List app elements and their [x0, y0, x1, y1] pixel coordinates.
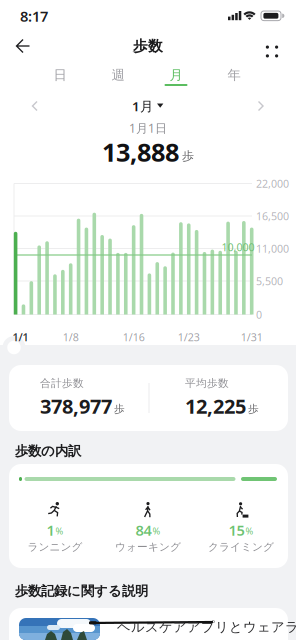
staticText: 1/23	[178, 330, 200, 344]
staticText: 1/1	[12, 330, 28, 344]
staticText: 378,977	[40, 393, 112, 419]
staticText: 日	[53, 67, 66, 83]
button[interactable]	[15, 39, 31, 53]
button[interactable]: 年	[205, 63, 263, 87]
staticText: 13,888	[102, 135, 179, 169]
staticText: 11,000	[256, 241, 289, 256]
staticText: 歩数の内訳	[15, 443, 81, 459]
staticText: 年	[227, 67, 240, 83]
staticText: 84	[135, 520, 151, 540]
button[interactable]	[258, 101, 264, 111]
staticText: 歩	[182, 149, 194, 163]
staticText: 1月1日	[129, 120, 167, 136]
button[interactable]: 日	[31, 63, 89, 87]
staticText: 週	[111, 67, 124, 83]
staticText: 1/31	[241, 330, 263, 344]
staticText: 合計歩数	[40, 377, 84, 390]
button[interactable]	[32, 101, 38, 111]
staticText: %	[152, 525, 160, 537]
staticText: 5,500	[256, 274, 283, 288]
staticText: ウォーキング	[115, 540, 181, 553]
button[interactable]: ヘルスケアアプリとウェアラブ	[9, 608, 288, 640]
staticText: 0	[256, 307, 262, 322]
staticText: 歩数	[133, 37, 163, 55]
staticText: 10,000	[221, 240, 254, 254]
staticText: 歩	[114, 402, 125, 416]
staticText: ヘルスケアアプリとウェアラブ	[117, 619, 296, 635]
staticText: %	[55, 525, 63, 537]
staticText: 平均歩数	[185, 377, 229, 390]
staticText: 1/8	[63, 330, 79, 344]
button[interactable]	[264, 44, 280, 59]
staticText: 15	[228, 520, 244, 540]
staticText: 8:17	[20, 6, 48, 26]
staticText: 16,500	[256, 209, 289, 223]
staticText: 歩	[248, 402, 259, 416]
button[interactable]: 週	[89, 63, 147, 87]
staticText: 12,225	[185, 393, 246, 419]
staticText: クライミング	[208, 540, 274, 553]
button[interactable]: 月	[147, 63, 205, 87]
staticText: 1月	[132, 97, 153, 115]
staticText: 月	[169, 67, 182, 83]
staticText: 22,000	[256, 176, 289, 191]
staticText: %	[245, 525, 253, 537]
button[interactable]: 1月	[132, 97, 164, 115]
staticText: 1	[46, 520, 54, 540]
staticText: ランニング	[27, 540, 82, 553]
staticText: 1/16	[123, 330, 145, 344]
staticText: 歩数記録に関する説明	[15, 583, 148, 599]
